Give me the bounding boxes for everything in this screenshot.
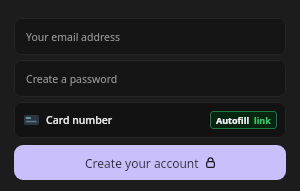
staticText: Autofill — [216, 114, 250, 126]
button[interactable]: Create your account — [14, 145, 286, 180]
staticText: Your email address — [26, 30, 121, 44]
staticText: Create a password — [26, 72, 118, 86]
other: Secure — [206, 157, 215, 168]
button[interactable]: Create a password — [14, 60, 286, 97]
other: Saved card — [24, 115, 39, 125]
button[interactable]: Autofill — [210, 111, 277, 129]
staticText: link — [254, 114, 271, 126]
staticText: Card number — [46, 113, 113, 127]
button[interactable]: Saved card — [14, 102, 286, 138]
button[interactable]: Your email address — [14, 18, 286, 55]
staticText: Create your account — [85, 155, 199, 171]
